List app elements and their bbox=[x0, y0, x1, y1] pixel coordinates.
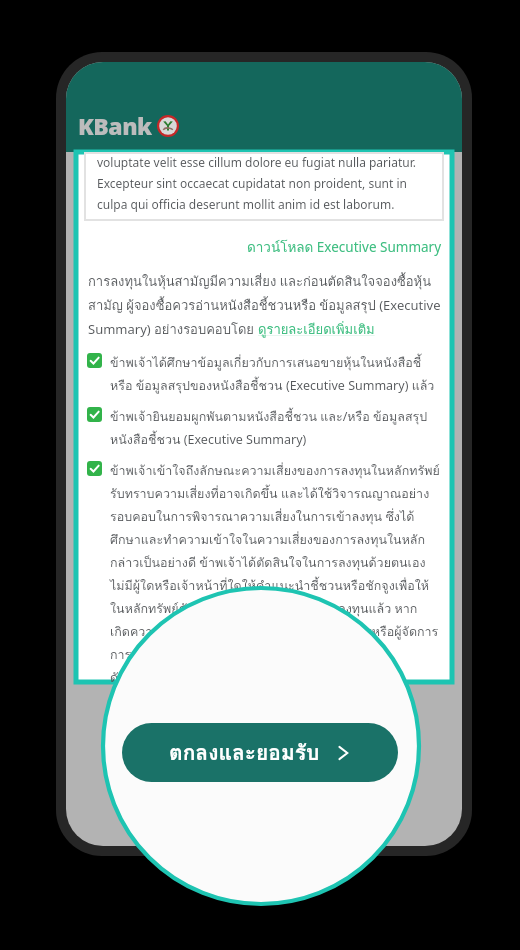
staticText: Summary) อย่างรอบคอบโดย bbox=[88, 319, 258, 340]
staticText: ตกลงและยอมรับ bbox=[169, 736, 320, 769]
other: Continue bbox=[334, 744, 352, 762]
staticText: การจัดจำหน่ายใด ๆ ในความเสียหายที่เกิดขึ… bbox=[110, 645, 353, 665]
staticText: Excepteur sint occaecat cupidatat non pr… bbox=[97, 175, 407, 191]
staticText: ศึกษาและทำความเข้าใจในความเสี่ยงของการลง… bbox=[110, 530, 444, 550]
staticText: ดูรายละเอียดเพิ่มเติม bbox=[258, 319, 375, 340]
staticText: voluptate velit esse cillum dolore eu fu… bbox=[97, 154, 416, 170]
staticText: กล่าวเป็นอย่างดี ข้าพเจ้าได้ตัดสินใจในกา… bbox=[110, 553, 444, 573]
staticText: หนังสือชี้ชวน (Executive Summary) bbox=[110, 430, 307, 450]
button[interactable]: ข้าพเจ้ายินยอมผูกพันตามหนังสือชี้ชวน และ… bbox=[76, 407, 452, 450]
staticText: เกิดความเสียหายใด ๆ จะไม่เรียกร้องจากธนา… bbox=[110, 622, 439, 642]
staticText: ไม่มีผู้ใดหรือเจ้าหน้าที่ใดให้คำแนะนำชี้… bbox=[110, 576, 444, 596]
staticText: สามัญ ผู้จองซื้อควรอ่านหนังสือชี้ชวนหรือ… bbox=[88, 295, 441, 316]
staticText: รับทราบความเสี่ยงที่อาจเกิดขึ้น และได้ใช… bbox=[110, 484, 430, 504]
staticText: ดาวน์โหลด Executive Summary bbox=[247, 236, 442, 257]
staticText: ข้าพเจ้าได้ศึกษาข้อมูลเกี่ยวกับการเสนอขา… bbox=[110, 353, 444, 373]
staticText: การลงทุนในหุ้นสามัญมีความเสี่ยง และก่อนต… bbox=[88, 271, 432, 292]
staticText: ข้าพเจ้ายินยอมผูกพันตามหนังสือชี้ชวน และ… bbox=[110, 407, 444, 427]
button[interactable]: ตกลงและยอมรับ bbox=[122, 723, 398, 782]
button[interactable]: ข้าพเจ้าเข้าใจถึงลักษณะความเสี่ยงของการล… bbox=[76, 461, 452, 682]
staticText: KBank bbox=[78, 110, 152, 141]
staticText: ในหลักทรัพย์ดังกล่าวแต่อย่างใด เมื่อได้เ… bbox=[110, 599, 418, 619]
staticText: ข้าพเจ้าเข้าใจถึงลักษณะความเสี่ยงของการล… bbox=[110, 461, 444, 481]
staticText: culpa qui officia deserunt mollit anim i… bbox=[97, 196, 395, 212]
staticText: รอบคอบในการพิจารณาความเสี่ยงในการเข้าลงท… bbox=[110, 507, 444, 527]
staticText: ดังกล่าว bbox=[110, 668, 154, 682]
button[interactable]: ข้าพเจ้าได้ศึกษาข้อมูลเกี่ยวกับการเสนอขา… bbox=[76, 353, 452, 396]
button[interactable]: ดูรายละเอียดเพิ่มเติม bbox=[258, 319, 375, 340]
staticText: หรือ ข้อมูลสรุปของหนังสือชี้ชวน (Executi… bbox=[110, 376, 435, 396]
button[interactable]: ดาวน์โหลด Executive Summary bbox=[245, 234, 444, 259]
